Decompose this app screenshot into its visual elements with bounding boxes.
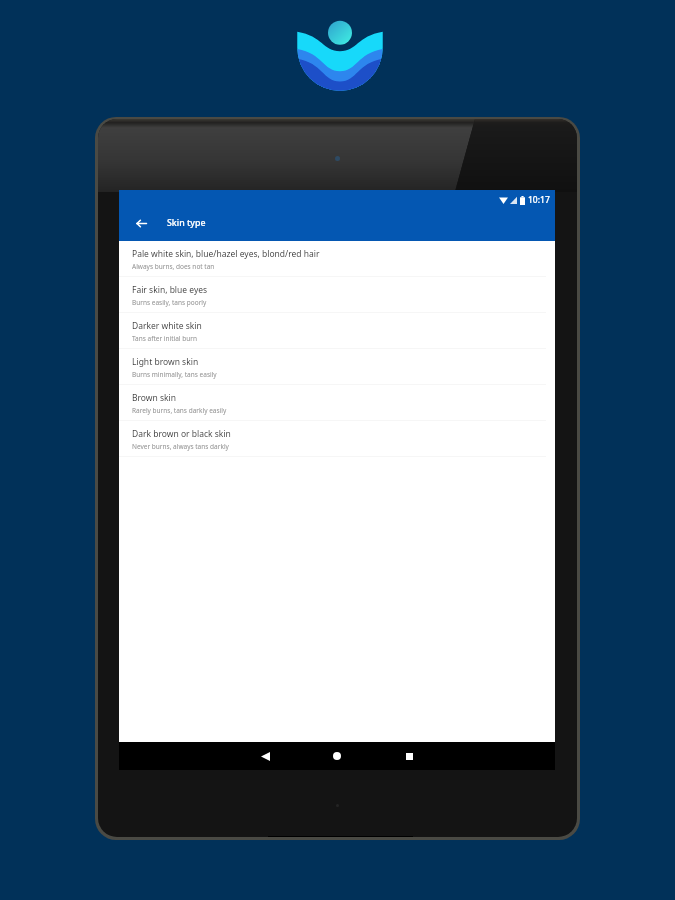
staticText: Rarely burns, tans darkly easily xyxy=(132,406,227,415)
staticText: Skin type xyxy=(167,217,206,229)
staticText: Tans after initial burn xyxy=(132,334,197,343)
staticText: Fair skin, blue eyes xyxy=(132,284,208,296)
staticText: Light brown skin xyxy=(132,356,199,368)
staticText: Brown skin xyxy=(132,392,177,404)
staticText: Always burns, does not tan xyxy=(132,262,215,271)
staticText: Burns minimally, tans easily xyxy=(132,370,217,379)
button[interactable]: Brown skin xyxy=(119,385,555,421)
button[interactable]: Fair skin, blue eyes xyxy=(119,277,555,313)
staticText: Never burns, always tans darkly xyxy=(132,442,229,451)
button[interactable]: Darker white skin xyxy=(119,313,555,349)
button[interactable]: Light brown skin xyxy=(119,349,555,385)
staticText: Pale white skin, blue/hazel eyes, blond/… xyxy=(132,248,320,260)
button[interactable]: Dark brown or black skin xyxy=(119,421,555,457)
staticText: 10:17 xyxy=(528,194,550,206)
button[interactable]: Pale white skin, blue/hazel eyes, blond/… xyxy=(119,241,555,277)
staticText: Darker white skin xyxy=(132,320,202,332)
button[interactable]: Back xyxy=(241,742,289,770)
button[interactable]: Recent apps xyxy=(385,742,433,770)
staticText: Burns easily, tans poorly xyxy=(132,298,207,307)
button[interactable]: Home xyxy=(313,742,361,770)
staticText: Dark brown or black skin xyxy=(132,428,231,440)
button[interactable]: Navigate up xyxy=(129,211,153,235)
